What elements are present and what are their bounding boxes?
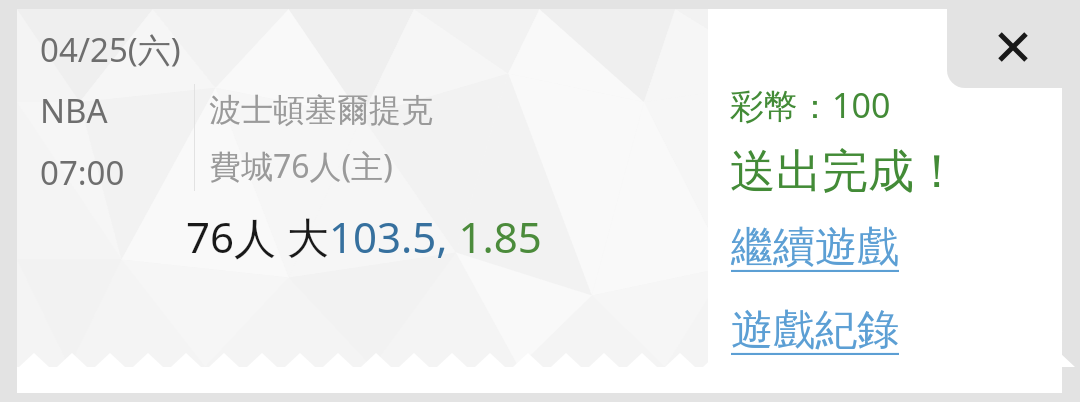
- staticText: 遊戲紀錄: [731, 304, 899, 357]
- staticText: 波士頓塞爾提克: [209, 90, 433, 130]
- button[interactable]: 04/25(六): [17, 9, 1062, 393]
- staticText: 04/25(六): [40, 27, 181, 72]
- staticText: 繼續遊戲: [731, 221, 899, 274]
- button[interactable]: Close: [947, 0, 1080, 88]
- staticText: 費城76人(主): [209, 144, 393, 188]
- button[interactable]: 遊戲紀錄: [730, 303, 900, 358]
- staticText: NBA: [40, 88, 108, 133]
- staticText: 送出完成！: [730, 143, 960, 201]
- button[interactable]: 繼續遊戲: [730, 220, 900, 275]
- staticText: 76人 大103.5, 1.85: [186, 208, 542, 265]
- staticText: 彩幣：100: [730, 82, 891, 128]
- staticText: 07:00: [40, 150, 125, 195]
